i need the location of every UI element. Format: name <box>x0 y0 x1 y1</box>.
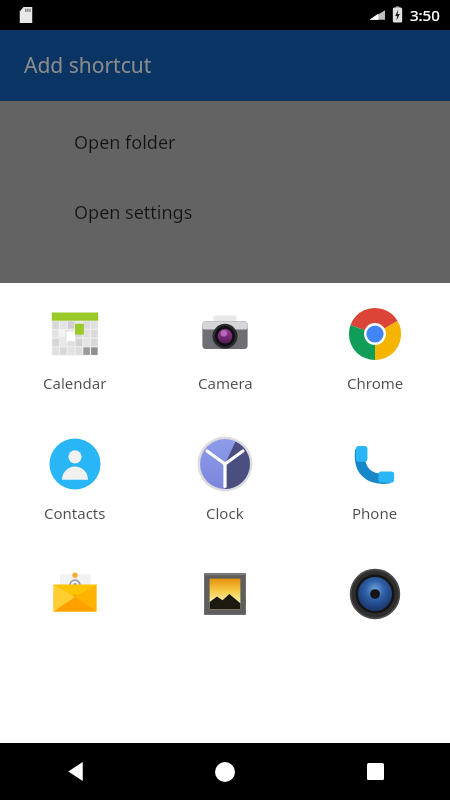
staticText: Contacts <box>44 503 106 523</box>
button[interactable]: App <box>300 565 450 623</box>
button[interactable]: Phone <box>300 435 450 523</box>
button[interactable]: Camera <box>150 305 300 393</box>
button[interactable]: Calendar <box>0 305 150 393</box>
button[interactable]: Open settings <box>0 195 450 229</box>
staticText: Calendar <box>43 373 107 393</box>
button[interactable]: Clock <box>150 435 300 523</box>
button[interactable]: Open folder <box>0 125 450 159</box>
staticText: Open settings <box>74 200 193 225</box>
button[interactable]: Home <box>150 743 300 800</box>
staticText: 3:50 <box>410 5 440 25</box>
staticText: Chrome <box>347 373 404 393</box>
button[interactable]: Chrome <box>300 305 450 393</box>
button[interactable]: Recents <box>300 743 450 800</box>
button[interactable]: Contacts <box>0 435 150 523</box>
staticText: Add shortcut <box>24 51 152 80</box>
button[interactable]: Back <box>0 743 150 800</box>
staticText: Clock <box>206 503 244 523</box>
staticText: Camera <box>198 373 253 393</box>
button[interactable]: App <box>150 565 300 623</box>
button[interactable]: App <box>0 565 150 623</box>
staticText: Phone <box>352 503 398 523</box>
staticText: Open folder <box>74 130 176 155</box>
